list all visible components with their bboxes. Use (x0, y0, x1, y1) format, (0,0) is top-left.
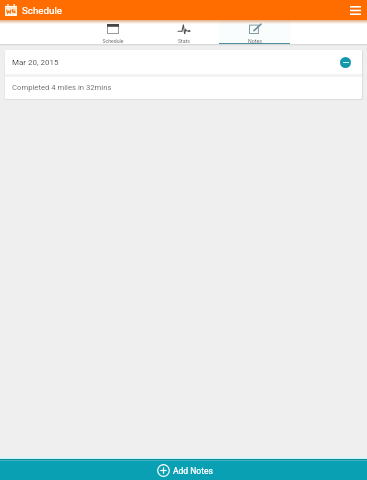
staticText: Schedule (102, 38, 124, 44)
button[interactable]: Remove note (340, 57, 351, 68)
staticText: Mar 20, 2015 (12, 58, 59, 67)
staticText: Stats (178, 38, 190, 44)
staticText: Add Notes (173, 466, 213, 476)
button[interactable]: Schedule (77, 20, 148, 44)
button[interactable]: Menu (345, 0, 365, 20)
button[interactable]: Stats (148, 20, 219, 44)
button[interactable]: Mar 20, 2015 (5, 50, 362, 74)
button[interactable]: App icon (5, 4, 17, 16)
button[interactable]: Notes (219, 20, 290, 44)
staticText: Notes (248, 38, 262, 44)
staticText: Completed 4 miles in 32mins (12, 83, 112, 92)
staticText: Schedule (22, 5, 63, 16)
button[interactable]: Add Notes (0, 460, 367, 480)
